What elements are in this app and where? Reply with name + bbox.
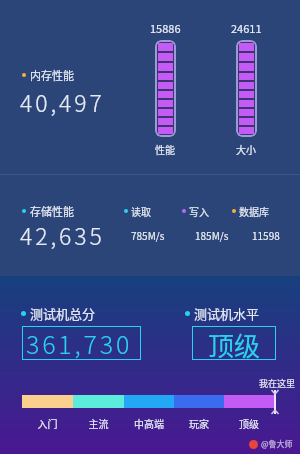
staticText: 性能 xyxy=(155,142,175,156)
staticText: 数据库 xyxy=(239,204,269,218)
staticText: 玩家 xyxy=(174,416,224,430)
staticText: 测试机总分 xyxy=(30,304,96,323)
staticText: 24611 xyxy=(231,20,262,36)
button[interactable]: 顶级 xyxy=(192,326,276,360)
staticText: 大小 xyxy=(236,142,256,156)
staticText: 40,497 xyxy=(20,85,105,118)
staticText: 顶级 xyxy=(224,416,274,430)
staticText: 测试机水平 xyxy=(194,304,260,323)
staticText: 11598 xyxy=(252,228,280,242)
button[interactable]: 测试机总分 xyxy=(21,304,96,323)
staticText: 我在这里 xyxy=(259,377,296,390)
staticText: 785M/s xyxy=(131,228,165,242)
staticText: @鲁大师 xyxy=(261,438,293,450)
staticText: 185M/s xyxy=(195,228,229,242)
button[interactable]: 内存性能 xyxy=(22,67,74,83)
staticText: 361,730 xyxy=(26,325,133,359)
staticText: 15886 xyxy=(150,20,181,36)
button[interactable]: 测试机水平 xyxy=(185,304,260,323)
button[interactable]: 361,730 xyxy=(22,326,141,360)
button[interactable]: 存储性能 xyxy=(22,203,74,219)
staticText: 顶级 xyxy=(208,326,261,360)
staticText: 中高端 xyxy=(124,416,174,430)
staticText: 主流 xyxy=(73,416,124,430)
staticText: 存储性能 xyxy=(30,203,74,219)
staticText: 入门 xyxy=(22,416,73,430)
staticText: 读取 xyxy=(131,204,151,218)
staticText: 写入 xyxy=(189,204,209,218)
staticText: 42,635 xyxy=(20,218,105,251)
staticText: 内存性能 xyxy=(30,67,74,83)
